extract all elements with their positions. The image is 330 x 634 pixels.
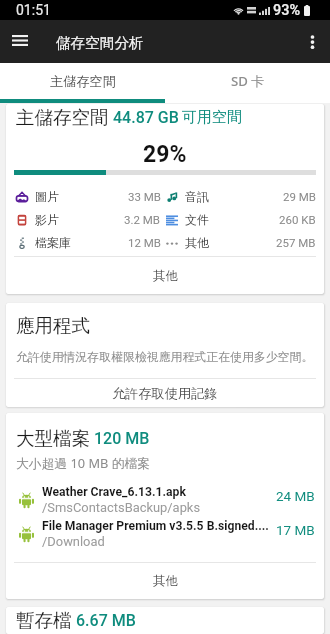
staticText: 允許使用情況存取權限檢視應用程式正在使用多少空間。 <box>16 350 314 365</box>
staticText: Weather Crave_6.13.1.apk <box>42 485 186 499</box>
staticText: 主儲存空間 <box>16 106 109 129</box>
staticText: 暫存檔 <box>16 609 72 632</box>
staticText: 3.2 MB <box>124 213 161 226</box>
button[interactable]: 主儲存空間 <box>0 63 165 99</box>
button[interactable]: Weather Crave_6.13.1.apk <box>6 483 324 517</box>
button[interactable]: 圖片 <box>16 185 161 208</box>
button[interactable]: 影片 <box>16 208 161 231</box>
button[interactable]: SD 卡 <box>165 63 330 99</box>
staticText: 檔案庫 <box>35 235 71 250</box>
staticText: 可用空間 <box>182 108 242 127</box>
button[interactable]: Open navigation drawer <box>0 20 40 63</box>
staticText: 93% <box>273 2 301 19</box>
staticText: 24 MB <box>276 488 315 504</box>
staticText: 主儲存空間 <box>50 73 116 90</box>
button[interactable]: File Manager Premium v3.5.5 B.signed.... <box>6 517 324 551</box>
button[interactable]: 其他 <box>166 231 316 254</box>
staticText: 120 MB <box>94 429 150 448</box>
button[interactable]: 其他 <box>6 257 324 294</box>
button[interactable]: More options <box>294 20 330 63</box>
staticText: 影片 <box>35 212 59 227</box>
button[interactable]: 允許存取使用記錄 <box>6 379 324 407</box>
staticText: 29 MB <box>283 190 316 203</box>
staticText: 29% <box>143 141 187 168</box>
staticText: SD 卡 <box>231 72 265 90</box>
staticText: 大型檔案 <box>16 427 90 450</box>
staticText: 音訊 <box>185 189 209 204</box>
button[interactable]: 其他 <box>6 563 324 599</box>
staticText: 其他 <box>153 268 178 284</box>
staticText: 其他 <box>185 235 209 250</box>
staticText: 允許存取使用記錄 <box>112 385 218 402</box>
button[interactable]: 文件 <box>166 208 316 231</box>
staticText: 257 MB <box>276 236 316 249</box>
staticText: 44.87 GB <box>113 108 179 127</box>
button[interactable]: 音訊 <box>166 185 316 208</box>
staticText: 12 MB <box>128 236 161 249</box>
staticText: 17 MB <box>276 522 315 538</box>
staticText: 6.67 MB <box>76 611 136 630</box>
staticText: 大小超過 10 MB 的檔案 <box>16 454 151 471</box>
staticText: 圖片 <box>35 189 59 204</box>
staticText: 應用程式 <box>16 314 90 337</box>
staticText: 儲存空間分析 <box>56 34 144 52</box>
staticText: /Download <box>42 534 105 549</box>
button[interactable]: 檔案庫 <box>16 231 161 254</box>
staticText: File Manager Premium v3.5.5 B.signed.... <box>42 519 269 533</box>
staticText: 其他 <box>153 573 178 589</box>
staticText: /SmsContactsBackup/apks <box>42 500 201 515</box>
staticText: 01:51 <box>16 2 51 18</box>
staticText: 文件 <box>185 212 209 227</box>
staticText: 33 MB <box>128 190 161 203</box>
staticText: 260 KB <box>279 213 316 226</box>
